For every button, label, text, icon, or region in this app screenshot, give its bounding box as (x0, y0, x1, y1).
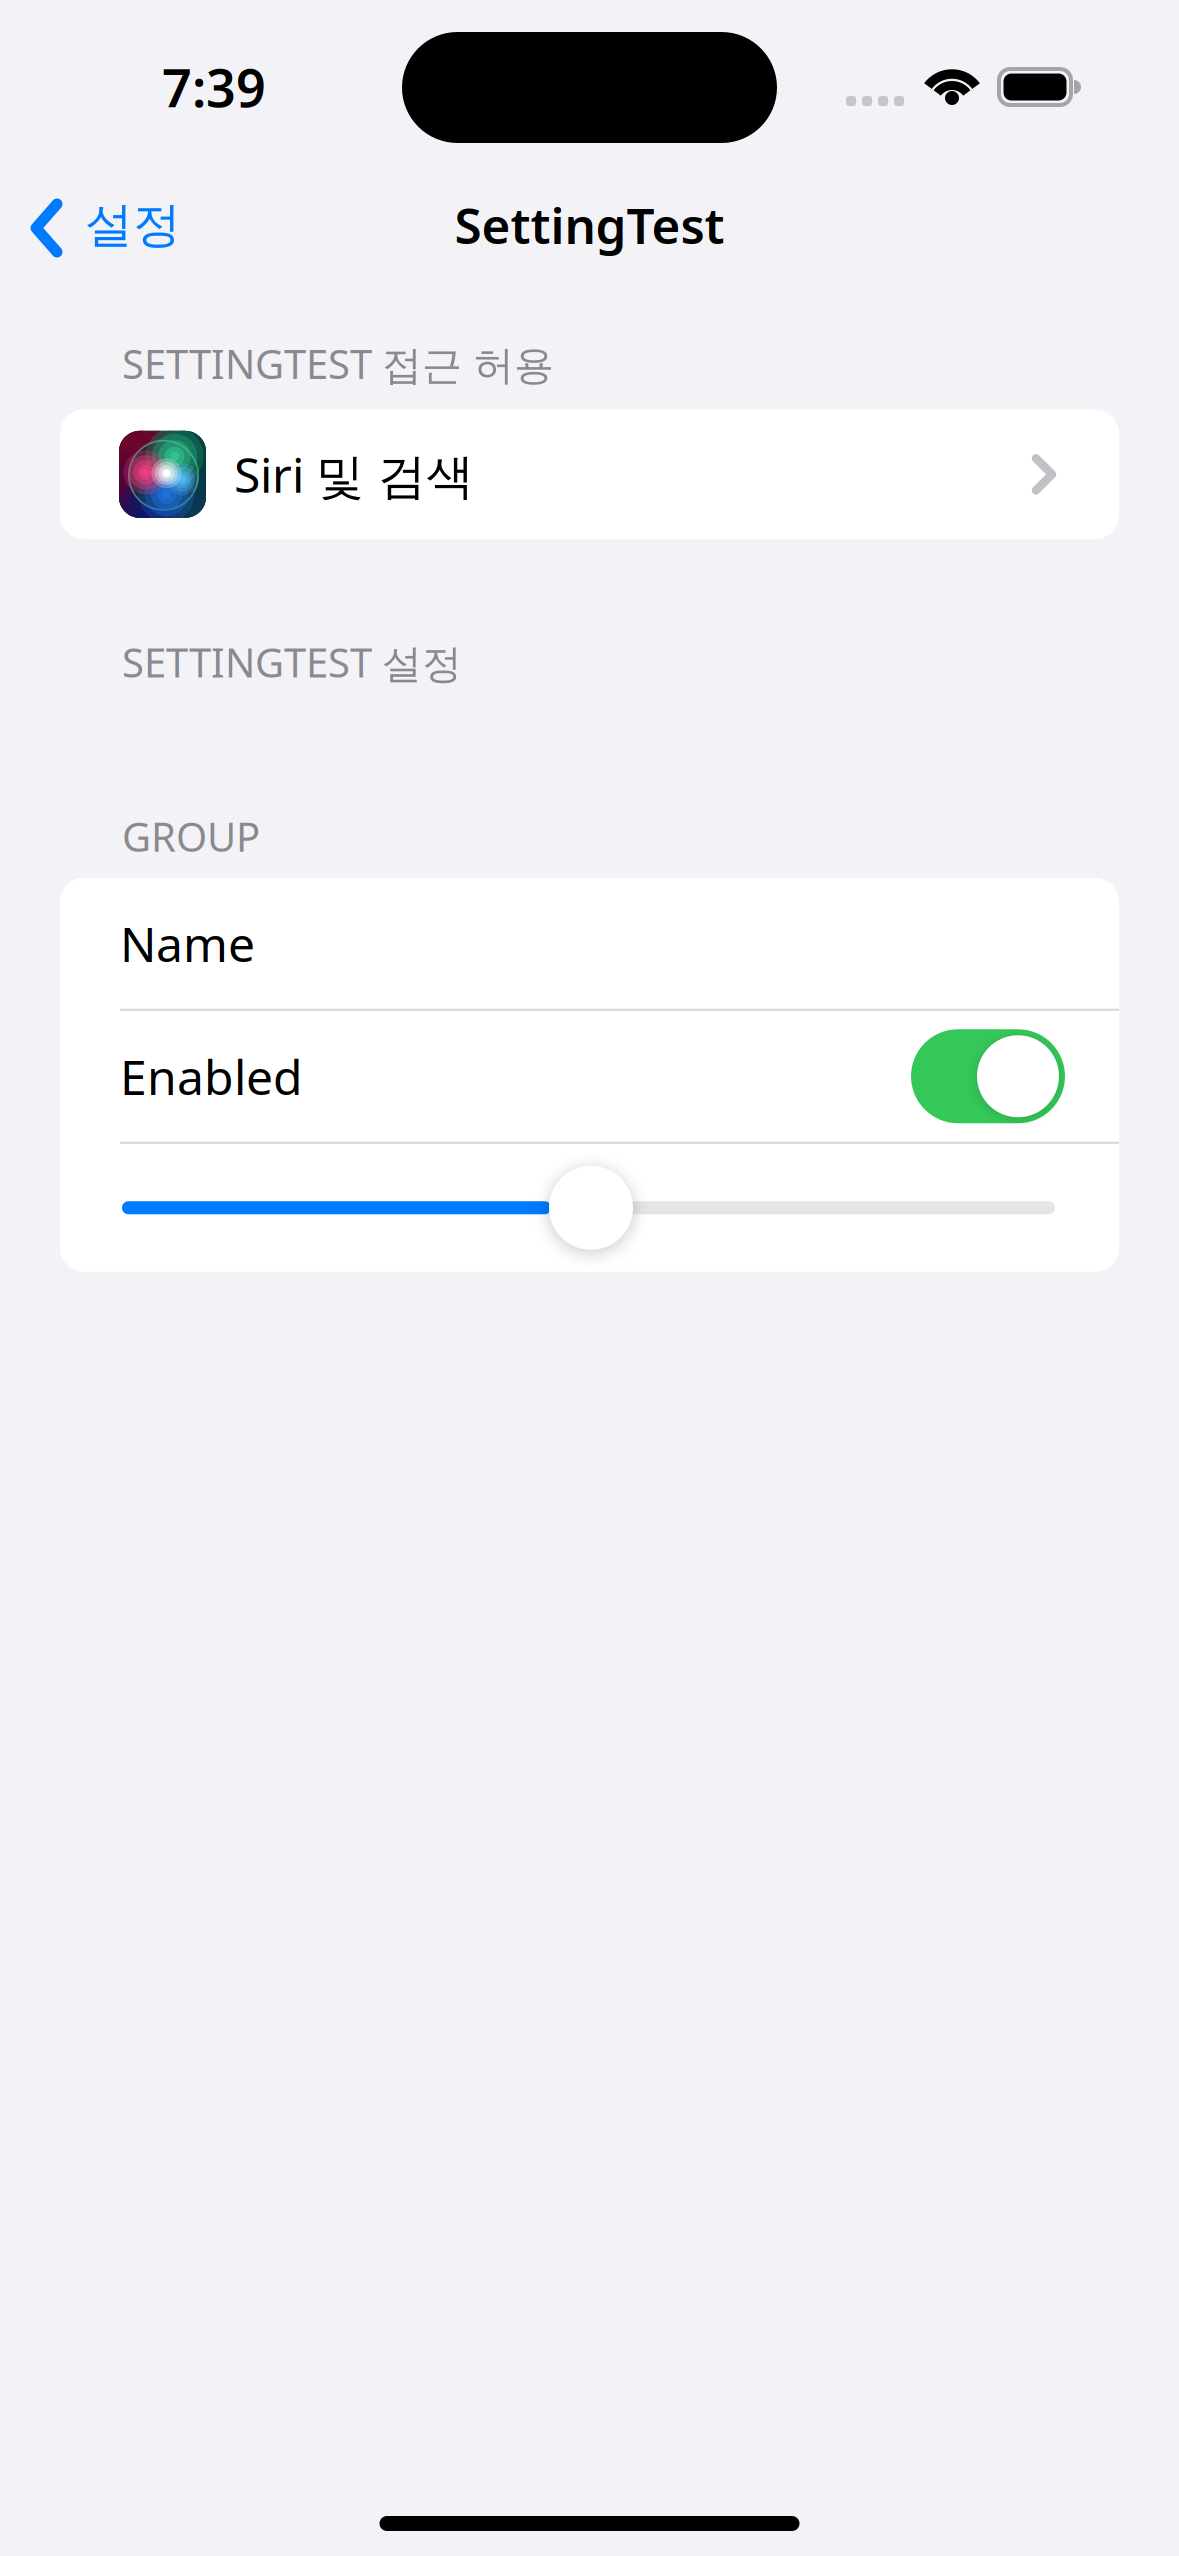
button[interactable]: Value (60, 1144, 1119, 1272)
staticText: 7:39 (162, 52, 266, 122)
button[interactable]: Siri 및 검색 (60, 409, 1119, 539)
button[interactable]: Enabled (60, 1011, 1119, 1142)
staticText: SettingTest (454, 192, 724, 257)
staticText: 설정 (85, 195, 181, 254)
button[interactable]: Back to 설정 (0, 168, 201, 260)
staticText: SETTINGTEST 접근 허용 (122, 337, 554, 390)
staticText: SETTINGTEST 설정 (122, 635, 462, 689)
staticText: Name (120, 911, 255, 975)
button[interactable]: Name (60, 878, 1119, 1009)
staticText: Siri 및 검색 (234, 442, 474, 506)
staticText: Enabled (120, 1044, 303, 1108)
staticText: GROUP (122, 810, 260, 863)
